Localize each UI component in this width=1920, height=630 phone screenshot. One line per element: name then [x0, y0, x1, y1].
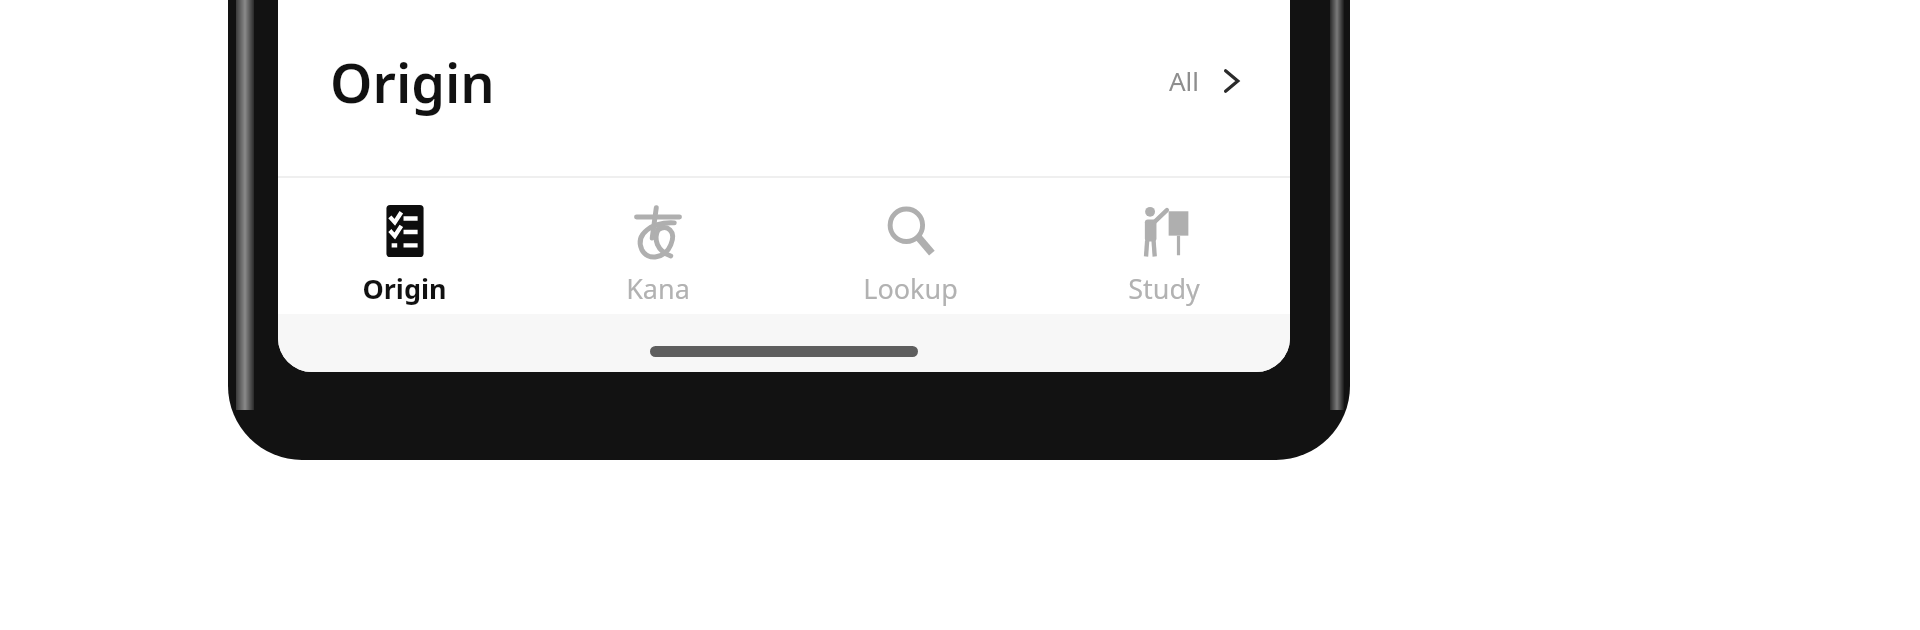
- button[interactable]: All: [1161, 55, 1256, 106]
- button[interactable]: Kana: [531, 178, 784, 314]
- staticText: Kana: [626, 270, 690, 307]
- staticText: All: [1169, 63, 1200, 98]
- other: Origin: [376, 202, 434, 260]
- other: Kana: [629, 202, 687, 260]
- staticText: Study: [1128, 270, 1200, 307]
- staticText: Lookup: [863, 270, 958, 307]
- button[interactable]: Origin: [278, 178, 531, 314]
- staticText: Origin: [362, 270, 447, 307]
- button[interactable]: Lookup: [784, 178, 1037, 314]
- button[interactable]: Study: [1037, 178, 1290, 314]
- other: Lookup: [882, 202, 940, 260]
- staticText: Origin: [330, 45, 495, 119]
- other: Study: [1135, 202, 1193, 260]
